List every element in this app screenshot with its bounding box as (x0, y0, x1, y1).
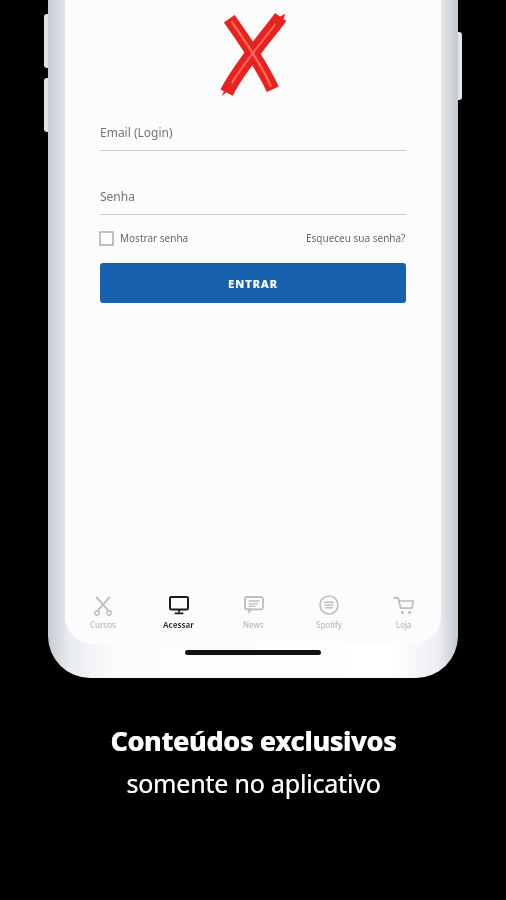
button[interactable]: News (216, 588, 291, 644)
staticText: News (243, 619, 264, 630)
button[interactable]: Acessar (141, 588, 216, 644)
button[interactable]: Loja (366, 588, 441, 644)
staticText: Senha (100, 188, 135, 204)
staticText: Cursos (90, 619, 116, 630)
button[interactable]: ENTRAR (100, 263, 406, 303)
button[interactable]: Mostrar senha (100, 231, 189, 245)
staticText: Mostrar senha (120, 231, 189, 245)
staticText: Conteúdos exclusivos (110, 722, 397, 759)
staticText: Acessar (163, 619, 194, 630)
button[interactable]: Esqueceu sua senha? (306, 231, 406, 245)
staticText: Spotify (316, 619, 342, 630)
staticText: Esqueceu sua senha? (306, 231, 406, 245)
button[interactable]: Spotify (291, 588, 366, 644)
button[interactable]: Email (Login) (100, 124, 406, 151)
staticText: somente no aplicativo (126, 766, 381, 800)
button[interactable]: Cursos (65, 588, 141, 644)
button[interactable]: Senha (100, 188, 406, 215)
staticText: Email (Login) (100, 124, 173, 140)
staticText: Loja (396, 619, 412, 630)
staticText: ENTRAR (228, 276, 279, 291)
